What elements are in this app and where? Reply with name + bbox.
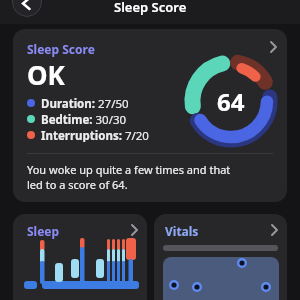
staticText: OK bbox=[27, 57, 65, 92]
staticText: Bedtime: 30/30 bbox=[41, 112, 127, 126]
staticText: Duration: 27/50 bbox=[41, 96, 129, 110]
button[interactable] bbox=[12, 0, 42, 17]
staticText: Sleep bbox=[27, 223, 60, 239]
staticText: Vitals bbox=[165, 223, 199, 239]
staticText: Interruptions: 7/20 bbox=[41, 128, 149, 142]
staticText: Sleep Score bbox=[27, 41, 95, 57]
button[interactable]: Sleep bbox=[13, 214, 147, 300]
staticText: You woke up quite a few times and that l… bbox=[27, 162, 231, 192]
staticText: 64 bbox=[217, 85, 245, 118]
button[interactable]: Sleep Score bbox=[13, 29, 287, 202]
button[interactable]: Vitals bbox=[154, 214, 287, 300]
staticText: Sleep Score bbox=[114, 0, 187, 16]
